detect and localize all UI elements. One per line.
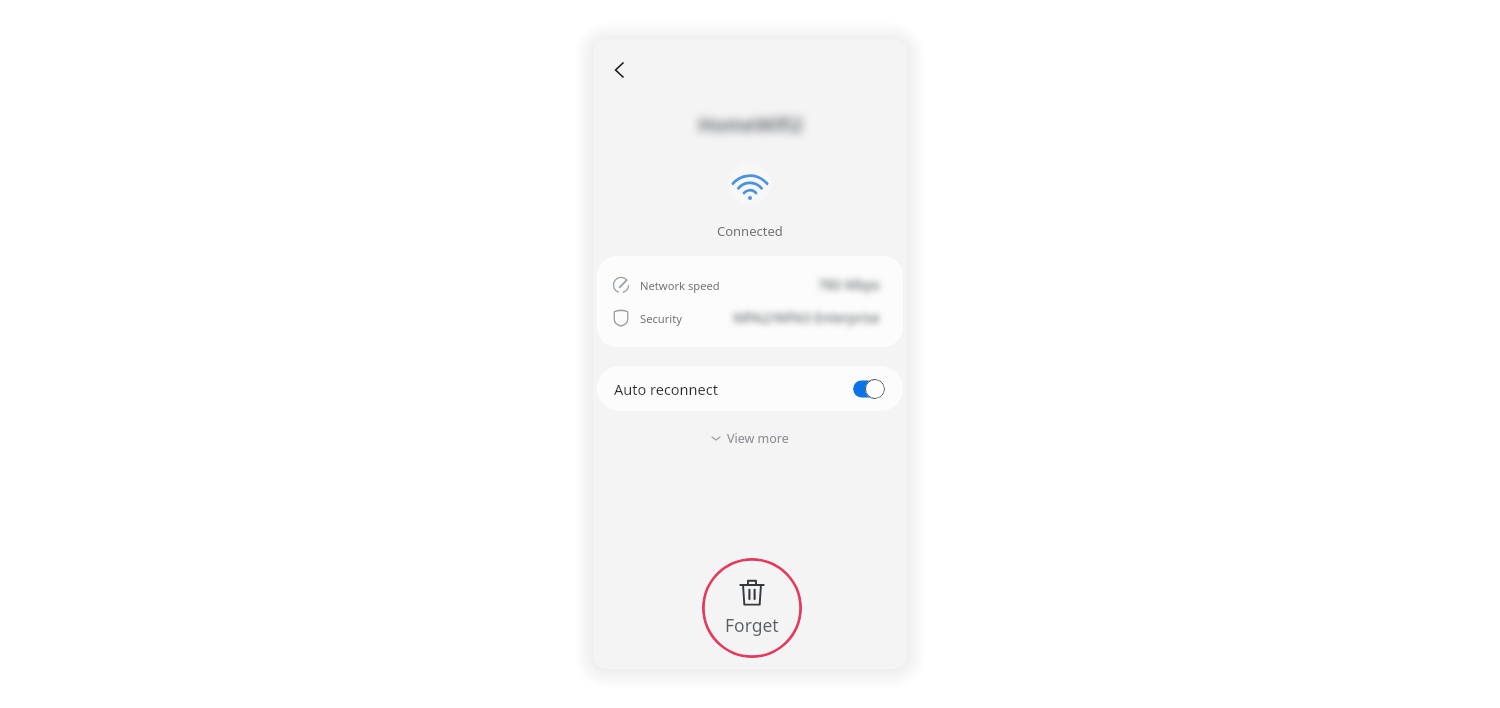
button[interactable]: Auto reconnect xyxy=(597,366,903,411)
button[interactable]: Back xyxy=(602,52,638,88)
staticText: Network speed xyxy=(640,278,720,293)
staticText: HomeWifi2 xyxy=(698,111,803,133)
staticText: WPA2/WPA3 Enterprise xyxy=(733,309,880,327)
staticText: Connected xyxy=(717,222,783,240)
staticText: Auto reconnect xyxy=(614,379,718,399)
staticText: 780 Mbps xyxy=(818,276,880,294)
button[interactable]: Auto reconnect xyxy=(853,379,885,399)
button[interactable]: Security xyxy=(597,301,903,335)
button[interactable]: View more xyxy=(705,427,795,449)
staticText: Security xyxy=(640,311,682,326)
button[interactable]: Network speed xyxy=(597,268,903,302)
staticText: Forget xyxy=(725,613,779,637)
button[interactable]: Forget network xyxy=(702,558,802,658)
staticText: View more xyxy=(727,430,789,446)
